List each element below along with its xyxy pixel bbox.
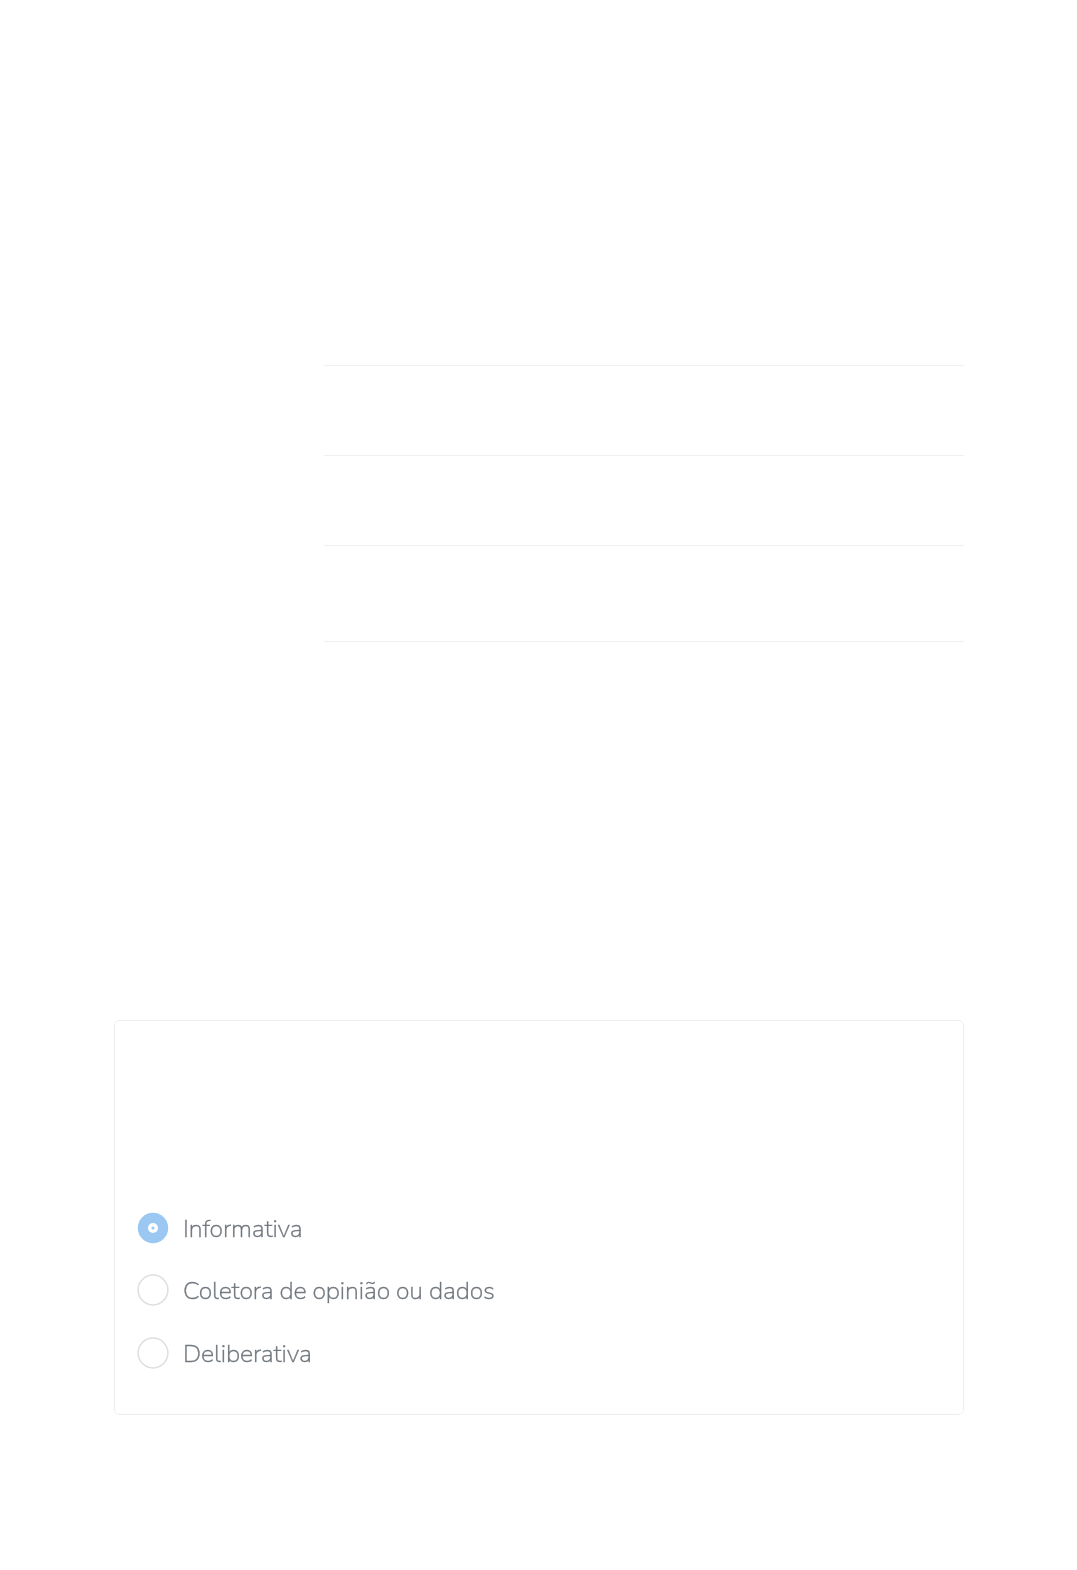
staticText: Deliberativa (183, 1337, 312, 1371)
staticText: Informativa (183, 1212, 303, 1246)
other: Deliberativa (136, 1336, 170, 1370)
button[interactable]: Deliberativa (114, 1327, 964, 1379)
button[interactable]: Coletora de opinião ou dados (114, 1264, 964, 1316)
other: Coletora de opinião ou dados (136, 1273, 170, 1307)
staticText: Deliberativa (183, 1337, 312, 1371)
staticText: Coletora de opinião ou dados (183, 1274, 495, 1308)
button[interactable]: Informativa selected (114, 1202, 964, 1254)
other: Informativa selected (136, 1211, 170, 1245)
staticText: Informativa (183, 1212, 303, 1246)
staticText: Coletora de opinião ou dados (183, 1274, 495, 1308)
